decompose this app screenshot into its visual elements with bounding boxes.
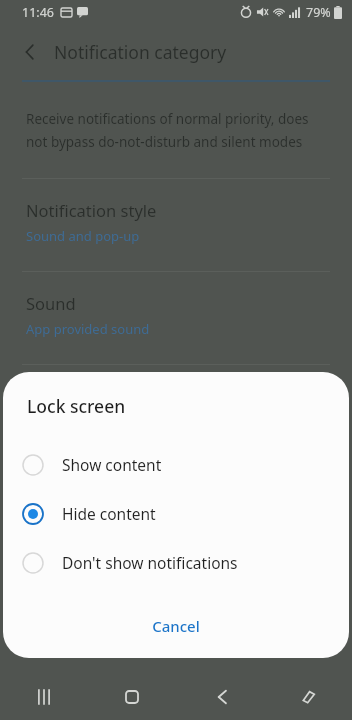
staticText: Hide content bbox=[62, 503, 156, 524]
button[interactable]: Show content bbox=[3, 440, 349, 489]
staticText: App provided sound bbox=[26, 320, 150, 338]
button[interactable]: Home bbox=[88, 674, 176, 720]
button[interactable]: Back bbox=[176, 674, 264, 720]
staticText: 11:46 bbox=[22, 4, 54, 21]
staticText: Lock screen bbox=[26, 385, 117, 407]
button[interactable]: Recents bbox=[0, 674, 88, 720]
staticText: Show content bbox=[62, 454, 162, 475]
staticText: Sound and pop-up bbox=[26, 227, 140, 245]
staticText: Receive notifications of normal priority… bbox=[26, 110, 309, 128]
staticText: Sound bbox=[26, 292, 76, 314]
staticText: Lock screen bbox=[27, 394, 126, 418]
staticText: Don't show notifications bbox=[62, 552, 238, 573]
staticText: 79% bbox=[306, 4, 331, 21]
button[interactable]: Notification style bbox=[0, 179, 352, 271]
button[interactable]: Don't show notifications bbox=[3, 538, 349, 587]
staticText: not bypass do-not-disturb and silent mod… bbox=[26, 133, 303, 151]
button[interactable]: Sound bbox=[0, 272, 352, 364]
button[interactable]: Overview bbox=[264, 674, 352, 720]
staticText: Cancel bbox=[152, 616, 200, 636]
staticText: Notification style bbox=[26, 199, 157, 221]
button[interactable]: Cancel bbox=[3, 609, 349, 643]
button[interactable]: Lock screen bbox=[0, 365, 352, 457]
button[interactable]: Back bbox=[10, 32, 50, 72]
button[interactable]: Hide content bbox=[3, 489, 349, 538]
staticText: Notification category bbox=[54, 40, 227, 64]
